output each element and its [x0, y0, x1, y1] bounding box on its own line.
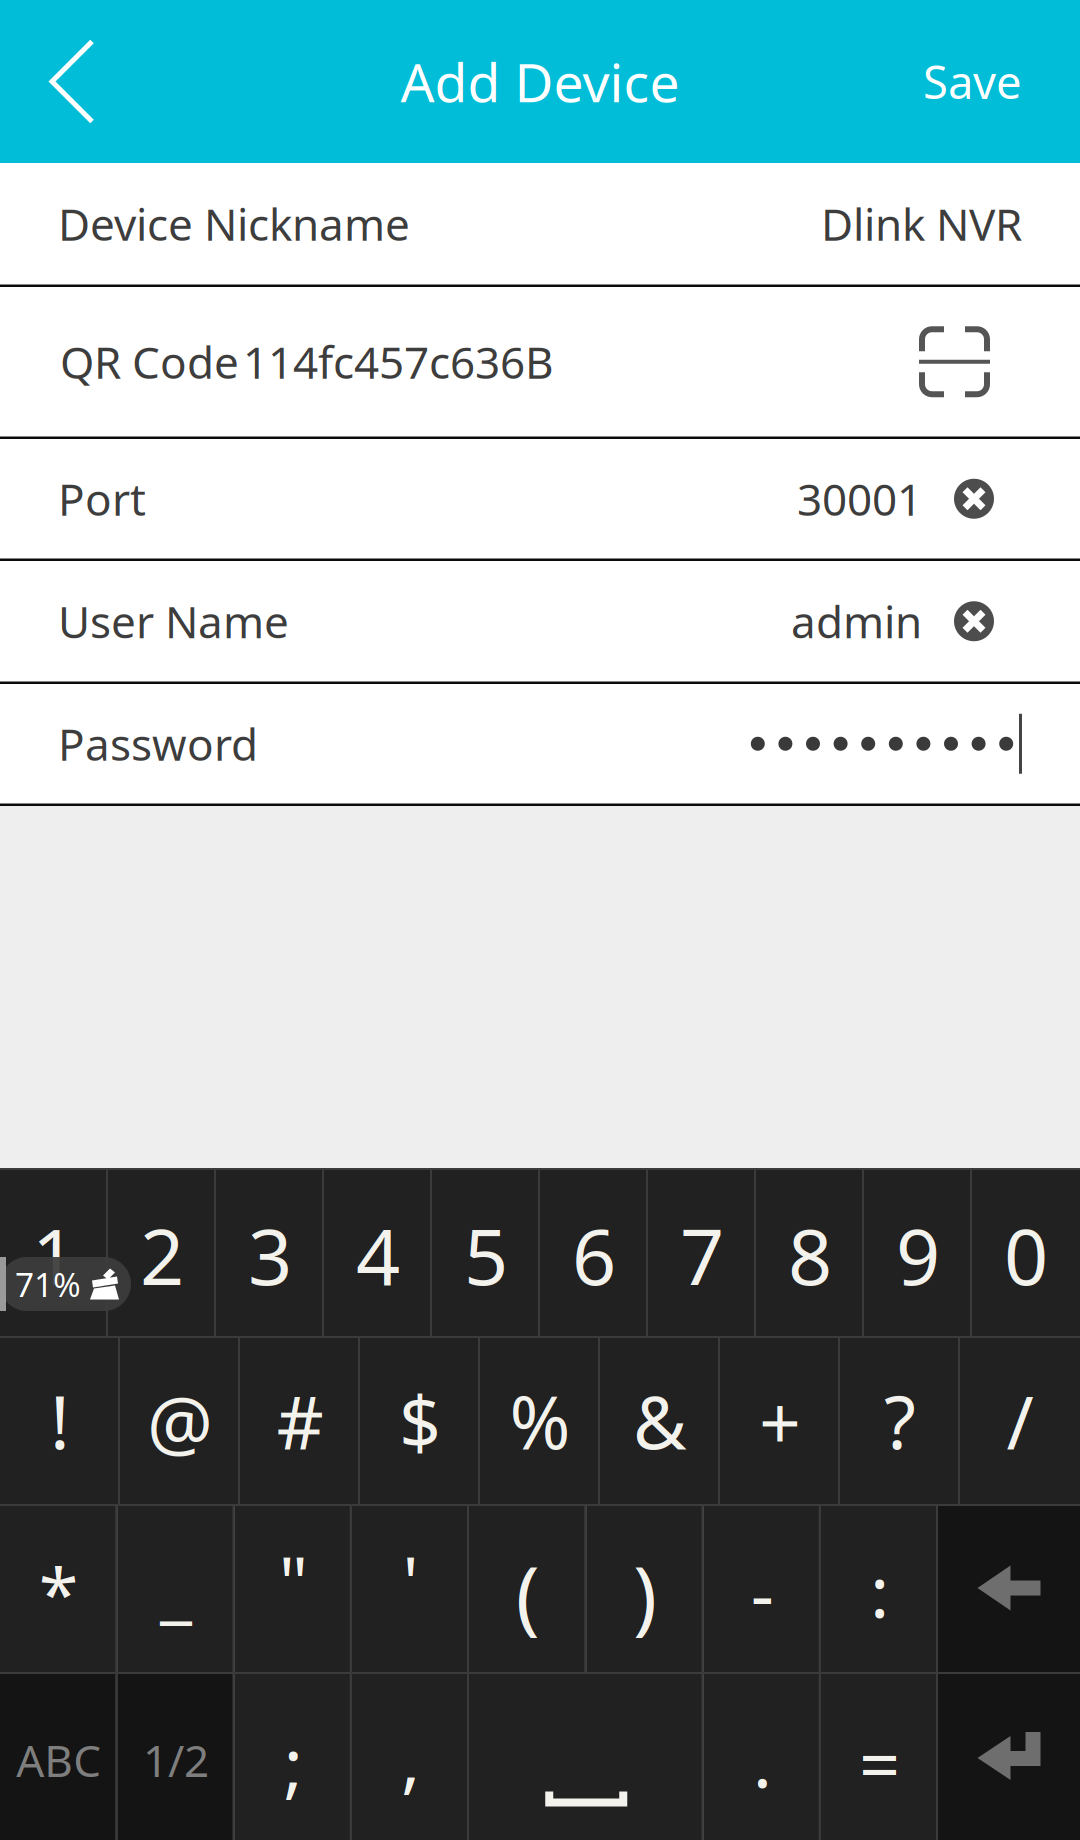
- staticText: _: [160, 1539, 192, 1635]
- staticText: 71%: [15, 1262, 81, 1306]
- staticText: ": [279, 1533, 308, 1629]
- button[interactable]: 0: [972, 1168, 1080, 1336]
- staticText: :: [870, 1542, 889, 1638]
- button[interactable]: ,: [352, 1672, 469, 1840]
- button[interactable]: [938, 1672, 1080, 1840]
- button[interactable]: #: [240, 1336, 360, 1504]
- staticText: admin: [791, 592, 922, 650]
- staticText: -: [751, 1544, 774, 1640]
- staticText: $: [399, 1372, 441, 1470]
- staticText: 3: [248, 1204, 292, 1306]
- button[interactable]: Password: [0, 684, 1080, 806]
- button[interactable]: Device Nickname: [0, 163, 1080, 287]
- staticText: #: [276, 1372, 323, 1470]
- button[interactable]: ;: [234, 1672, 352, 1840]
- staticText: ): [633, 1541, 657, 1647]
- button[interactable]: ABC: [0, 1672, 117, 1840]
- button[interactable]: 3: [216, 1168, 324, 1336]
- staticText: &: [633, 1372, 687, 1470]
- button[interactable]: /: [960, 1336, 1080, 1504]
- staticText: User Name: [58, 592, 289, 650]
- staticText: 7: [680, 1204, 724, 1306]
- staticText: =: [859, 1715, 900, 1811]
- staticText: 5: [464, 1204, 508, 1306]
- button[interactable]: $: [360, 1336, 480, 1504]
- button[interactable]: 5: [432, 1168, 540, 1336]
- staticText: +: [759, 1372, 801, 1470]
- staticText: 1: [32, 1204, 76, 1306]
- button[interactable]: 9: [864, 1168, 972, 1336]
- staticText: 4: [356, 1204, 400, 1306]
- button[interactable]: 2: [108, 1168, 216, 1336]
- button[interactable]: 1/2: [117, 1672, 234, 1840]
- staticText: Device Nickname: [58, 194, 410, 253]
- button[interactable]: [469, 1672, 703, 1840]
- button[interactable]: User Name: [0, 561, 1080, 684]
- staticText: ': [402, 1533, 418, 1629]
- button[interactable]: 6: [540, 1168, 648, 1336]
- staticText: Port: [58, 469, 146, 528]
- button[interactable]: ): [586, 1504, 703, 1672]
- button[interactable]: ?: [840, 1336, 960, 1504]
- staticText: 9: [896, 1204, 940, 1306]
- button[interactable]: &: [600, 1336, 720, 1504]
- staticText: (: [516, 1541, 540, 1647]
- button[interactable]: Port: [0, 439, 1080, 561]
- staticText: 8: [788, 1204, 832, 1306]
- button[interactable]: QR Code: [0, 287, 1080, 439]
- button[interactable]: !: [0, 1336, 120, 1504]
- staticText: ?: [884, 1372, 916, 1470]
- button[interactable]: 4: [324, 1168, 432, 1336]
- button[interactable]: .: [703, 1672, 821, 1840]
- button[interactable]: [938, 1504, 1080, 1672]
- staticText: QR Code: [60, 332, 239, 391]
- button[interactable]: %: [480, 1336, 600, 1504]
- staticText: ,: [401, 1710, 420, 1806]
- button[interactable]: -: [703, 1504, 821, 1672]
- button[interactable]: ': [352, 1504, 469, 1672]
- button[interactable]: 1: [0, 1168, 108, 1336]
- button[interactable]: _: [117, 1504, 234, 1672]
- staticText: %: [509, 1372, 570, 1470]
- button[interactable]: :: [821, 1504, 938, 1672]
- staticText: 2: [140, 1204, 184, 1306]
- staticText: ABC: [16, 1731, 101, 1789]
- staticText: 6: [572, 1204, 616, 1306]
- button[interactable]: @: [120, 1336, 240, 1504]
- staticText: Add Device: [400, 46, 679, 117]
- staticText: Save: [923, 51, 1022, 112]
- staticText: ;: [284, 1714, 303, 1810]
- button[interactable]: Save: [923, 0, 1080, 163]
- staticText: Dlink NVR: [821, 194, 1022, 253]
- staticText: Password: [58, 714, 258, 773]
- staticText: 0: [1004, 1204, 1048, 1306]
- button[interactable]: (: [469, 1504, 586, 1672]
- button[interactable]: +: [720, 1336, 840, 1504]
- staticText: *: [39, 1544, 79, 1640]
- staticText: @: [147, 1372, 213, 1470]
- staticText: 30001: [797, 469, 922, 528]
- button[interactable]: Back: [0, 0, 150, 163]
- staticText: /: [1006, 1372, 1033, 1470]
- button[interactable]: *: [0, 1504, 117, 1672]
- staticText: !: [50, 1372, 70, 1470]
- button[interactable]: 8: [756, 1168, 864, 1336]
- staticText: .: [753, 1712, 772, 1808]
- button[interactable]: =: [821, 1672, 938, 1840]
- staticText: 1/2: [143, 1731, 209, 1789]
- button[interactable]: 7: [648, 1168, 756, 1336]
- button[interactable]: Memory cleaner, 71 percent: [0, 1257, 131, 1311]
- button[interactable]: ": [234, 1504, 352, 1672]
- staticText: 114fc457c636B: [243, 332, 554, 391]
